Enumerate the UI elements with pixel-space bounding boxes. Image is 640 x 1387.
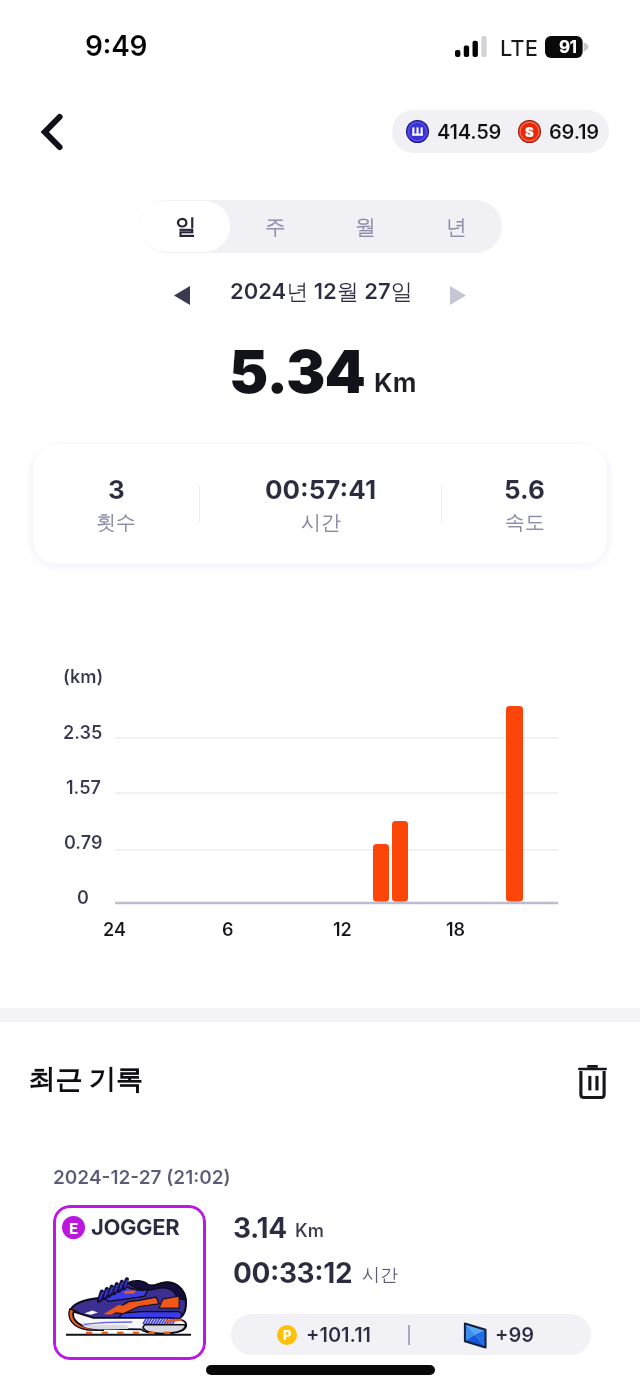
staticText: 3 (108, 474, 125, 505)
staticText: 18 (446, 919, 466, 941)
button[interactable]: 2024-12-27 (21:02) (33, 1145, 607, 1387)
staticText: 1.57 (66, 777, 101, 799)
staticText: 0.79 (64, 832, 103, 854)
staticText: 년 (446, 214, 467, 240)
staticText: 일 (175, 214, 196, 240)
staticText: 9:49 (85, 29, 148, 63)
button[interactable]: P (231, 1314, 591, 1355)
staticText: 시간 (362, 1264, 398, 1287)
staticText: 월 (355, 214, 376, 240)
button[interactable]: Back (28, 108, 76, 156)
staticText: E (69, 1219, 79, 1237)
staticText: P (283, 1327, 292, 1343)
staticText: 6 (222, 919, 234, 941)
button[interactable]: Next day (434, 271, 482, 319)
staticText: 횟수 (96, 510, 136, 535)
button[interactable]: Previous day (158, 271, 206, 319)
button[interactable]: 월 (320, 201, 411, 252)
staticText: 24 (103, 919, 126, 941)
button[interactable]: 년 (411, 201, 502, 252)
button[interactable]: 주 (230, 201, 320, 252)
staticText: 3.14 (233, 1211, 287, 1245)
staticText: 주 (265, 214, 286, 240)
staticText: 12 (333, 919, 352, 941)
staticText: 2024-12-27 (21:02) (53, 1166, 231, 1189)
staticText: +99 (495, 1323, 535, 1347)
staticText: 91 (559, 37, 577, 58)
staticText: 00:57:41 (265, 474, 377, 505)
button[interactable]: 414.59 (392, 110, 609, 153)
staticText: 00:33:12 (233, 1256, 353, 1290)
staticText: S (525, 124, 534, 140)
staticText: 69.19 (549, 120, 599, 144)
staticText: 414.59 (437, 120, 502, 144)
staticText: Km (295, 1220, 324, 1242)
staticText: 2.35 (63, 722, 103, 744)
staticText: Km (374, 367, 417, 398)
staticText: 속도 (505, 510, 545, 535)
staticText: 시간 (301, 510, 341, 535)
staticText: LTE (500, 35, 538, 62)
staticText: 5.6 (504, 474, 545, 505)
button[interactable]: Delete all records (569, 1058, 616, 1105)
staticText: 2024년 12월 27일 (230, 278, 413, 306)
button[interactable]: 일 (140, 201, 230, 252)
staticText: 0 (77, 887, 89, 909)
staticText: JOGGER (91, 1214, 180, 1241)
staticText: 5.34 (229, 336, 365, 407)
staticText: 최근 기록 (28, 1063, 143, 1097)
staticText: +101.11 (306, 1323, 372, 1347)
staticText: (km) (63, 666, 104, 688)
